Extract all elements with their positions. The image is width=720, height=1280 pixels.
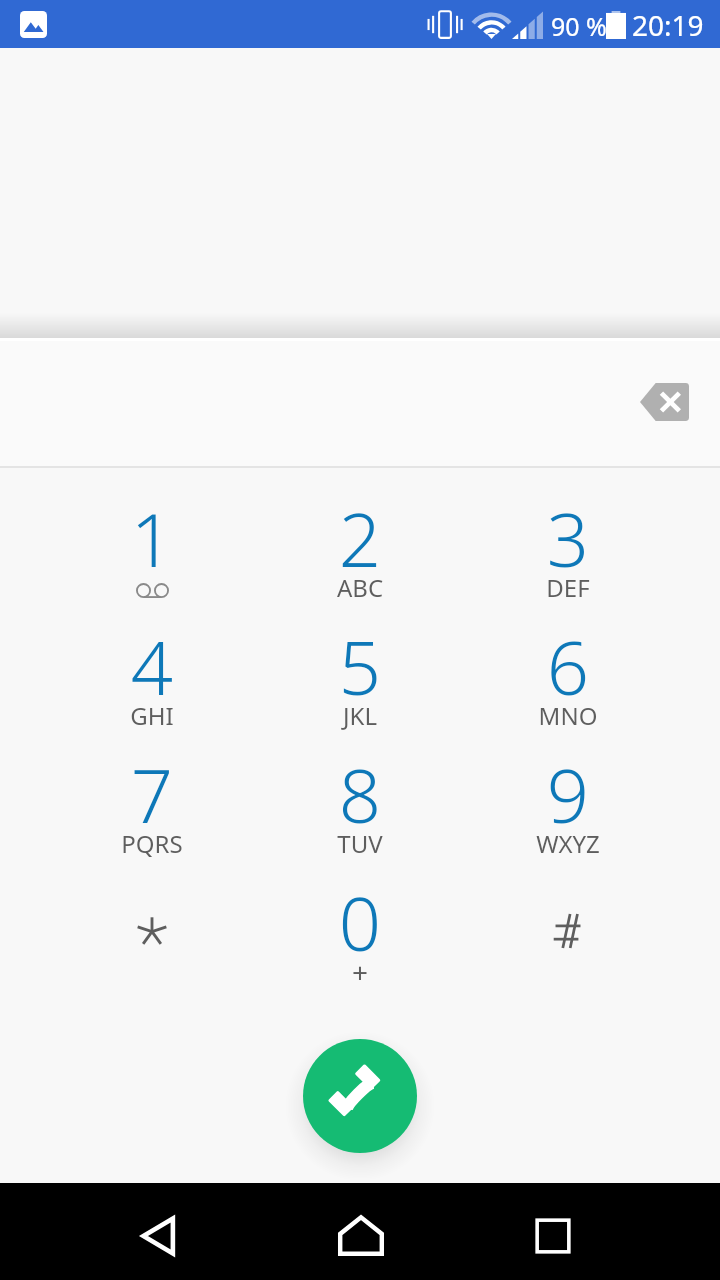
staticText: 20:19	[632, 6, 704, 44]
button[interactable]: 0	[256, 870, 464, 998]
button[interactable]: Call	[303, 1039, 417, 1153]
button[interactable]	[464, 870, 672, 998]
staticText: 3	[464, 488, 672, 589]
staticText: TUV	[256, 827, 464, 860]
button[interactable]: Phone number	[0, 338, 720, 466]
staticText: 5	[256, 616, 464, 717]
button[interactable]: 6	[464, 614, 672, 742]
button[interactable]: Back	[125, 1201, 195, 1271]
staticText: PQRS	[48, 827, 256, 860]
button[interactable]: 1	[48, 486, 256, 614]
staticText: 0	[256, 872, 464, 973]
staticText: 6	[464, 616, 672, 717]
button[interactable]: Recents	[518, 1201, 588, 1271]
staticText: 90 %	[551, 9, 607, 43]
staticText: +	[256, 953, 464, 991]
staticText: 7	[48, 744, 256, 845]
staticText: ABC	[256, 571, 464, 604]
button[interactable]: Backspace	[640, 383, 689, 421]
staticText: GHI	[48, 699, 256, 732]
button[interactable]: 2	[256, 486, 464, 614]
staticText: DEF	[464, 571, 672, 604]
button[interactable]: 8	[256, 742, 464, 870]
button[interactable]: 5	[256, 614, 464, 742]
staticText: 8	[256, 744, 464, 845]
button[interactable]	[48, 870, 256, 998]
staticText: 9	[464, 744, 672, 845]
button[interactable]: 9	[464, 742, 672, 870]
button[interactable]: 4	[48, 614, 256, 742]
staticText: WXYZ	[464, 827, 672, 860]
button[interactable]: 3	[464, 486, 672, 614]
button[interactable]: Home	[326, 1201, 396, 1271]
staticText: 2	[256, 488, 464, 589]
button[interactable]: 7	[48, 742, 256, 870]
staticText: 1	[48, 488, 256, 589]
staticText: 4	[48, 616, 256, 717]
staticText: JKL	[256, 699, 464, 732]
staticText: MNO	[464, 699, 672, 732]
